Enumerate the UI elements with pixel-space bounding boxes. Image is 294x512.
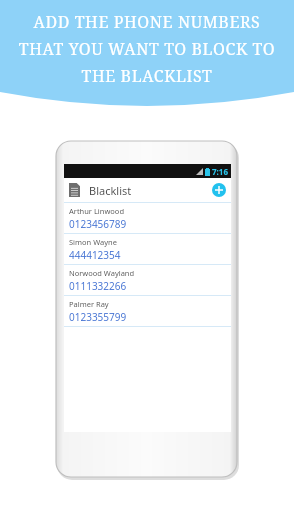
staticText: THE BLACKLIST: [6, 65, 288, 87]
staticText: 0111332266: [69, 279, 127, 293]
staticText: 0123355799: [69, 310, 127, 324]
staticText: Blacklist: [89, 183, 132, 198]
staticText: Arthur Linwood: [69, 206, 124, 216]
staticText: 444412354: [69, 248, 121, 262]
staticText: Simon Wayne: [69, 237, 117, 247]
button[interactable]: Simon Wayne: [64, 234, 231, 264]
staticText: 0123456789: [69, 217, 127, 231]
button[interactable]: Add number to blacklist: [212, 183, 226, 197]
button[interactable]: Arthur Linwood: [64, 203, 231, 233]
staticText: ADD THE PHONE NUMBERS: [6, 11, 288, 33]
staticText: THAT YOU WANT TO BLOCK TO: [6, 38, 288, 60]
staticText: Palmer Ray: [69, 299, 109, 309]
staticText: 7:16: [212, 166, 228, 177]
staticText: Norwood Wayland: [69, 268, 135, 278]
button[interactable]: Palmer Ray: [64, 296, 231, 326]
button[interactable]: Norwood Wayland: [64, 265, 231, 295]
